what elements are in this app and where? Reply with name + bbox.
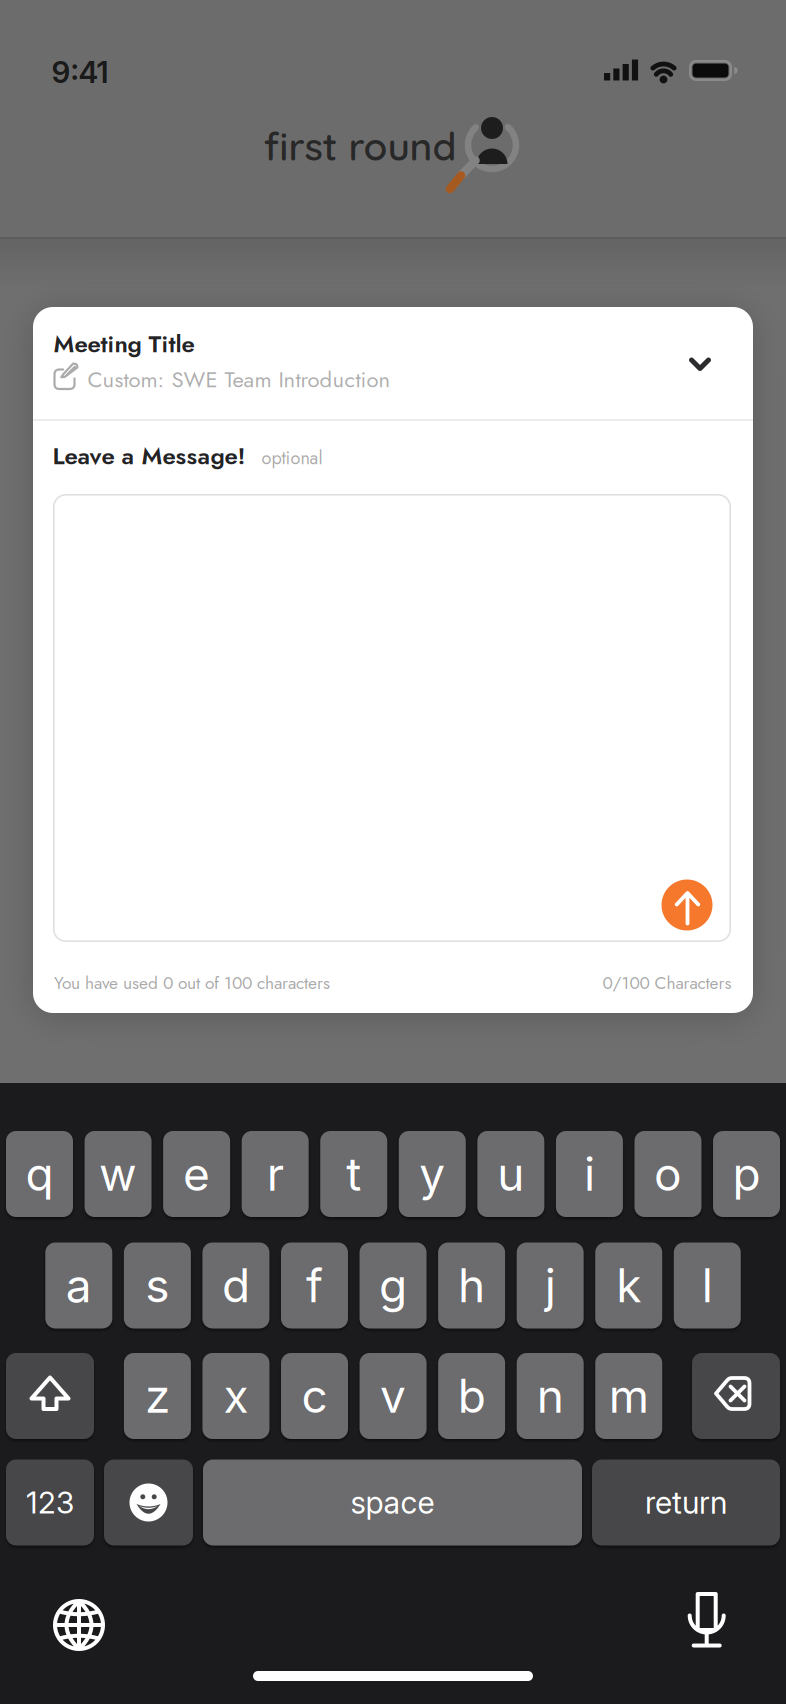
staticText: return	[645, 1484, 727, 1521]
staticText: w	[99, 1146, 137, 1202]
button[interactable]: f	[281, 1242, 348, 1328]
button[interactable]: Send	[661, 879, 712, 930]
staticText: s	[145, 1258, 169, 1313]
staticText: g	[379, 1258, 407, 1313]
staticText: h	[458, 1258, 485, 1313]
button[interactable]: z	[124, 1353, 191, 1439]
staticText: Leave a Message!	[52, 439, 245, 473]
staticText: f	[306, 1258, 323, 1313]
staticText: z	[145, 1368, 170, 1424]
staticText: a	[66, 1258, 92, 1313]
button[interactable]: y	[399, 1131, 466, 1217]
staticText: n	[537, 1368, 564, 1424]
button[interactable]: Delete	[692, 1353, 780, 1439]
button[interactable]: j	[517, 1242, 584, 1328]
staticText: y	[419, 1146, 445, 1202]
staticText: space	[350, 1484, 434, 1521]
staticText: m	[609, 1368, 649, 1424]
staticText: r	[267, 1146, 284, 1202]
button[interactable]: Next keyboard	[49, 1595, 109, 1655]
button[interactable]: l	[674, 1242, 741, 1328]
staticText: u	[497, 1146, 524, 1202]
staticText: You have used 0 out of 100 characters	[54, 970, 330, 995]
button[interactable]: space	[203, 1459, 582, 1545]
button[interactable]: p	[713, 1131, 780, 1217]
button[interactable]: q	[6, 1131, 73, 1217]
staticText: c	[301, 1368, 327, 1424]
button[interactable]: u	[477, 1131, 544, 1217]
staticText: b	[458, 1368, 486, 1424]
button[interactable]: r	[242, 1131, 309, 1217]
button[interactable]: w	[85, 1131, 152, 1217]
staticText: q	[25, 1146, 53, 1202]
button[interactable]: m	[595, 1353, 662, 1439]
button[interactable]: b	[438, 1353, 505, 1439]
staticText: t	[346, 1146, 361, 1202]
button[interactable]: k	[595, 1242, 662, 1328]
staticText: first round	[263, 122, 456, 170]
staticText: k	[616, 1258, 641, 1313]
button[interactable]: n	[517, 1353, 584, 1439]
staticText: x	[223, 1368, 248, 1424]
button[interactable]: d	[202, 1242, 269, 1328]
button[interactable]: return	[592, 1459, 780, 1545]
button[interactable]: 123	[6, 1459, 94, 1545]
button[interactable]: Shift	[6, 1353, 94, 1439]
staticText: e	[183, 1146, 210, 1202]
button[interactable]: a	[45, 1242, 112, 1328]
staticText: optional	[261, 445, 322, 471]
staticText: p	[732, 1146, 760, 1202]
button[interactable]: h	[438, 1242, 505, 1328]
staticText: Custom: SWE Team Introduction	[87, 364, 390, 395]
staticText: v	[380, 1368, 406, 1424]
button[interactable]: i	[556, 1131, 623, 1217]
staticText: i	[584, 1146, 595, 1202]
staticText: 0/100 Characters	[602, 970, 731, 995]
button[interactable]: v	[360, 1353, 427, 1439]
button[interactable]: g	[359, 1242, 426, 1328]
button[interactable]: o	[634, 1131, 701, 1217]
button[interactable]: s	[124, 1242, 191, 1328]
staticText: Meeting Title	[53, 327, 194, 361]
button[interactable]: x	[202, 1353, 269, 1439]
staticText: 123	[26, 1484, 74, 1521]
button[interactable]: Meeting Title	[33, 307, 753, 419]
staticText: d	[222, 1258, 250, 1313]
staticText: o	[654, 1146, 682, 1202]
staticText: j	[545, 1258, 556, 1313]
staticText: 9:41	[51, 54, 108, 90]
button[interactable]: Dictate	[679, 1591, 735, 1651]
button[interactable]: t	[320, 1131, 387, 1217]
button[interactable]: Emoji	[104, 1459, 193, 1545]
staticText: l	[702, 1258, 713, 1313]
button[interactable]: c	[281, 1353, 348, 1439]
button[interactable]: e	[163, 1131, 230, 1217]
